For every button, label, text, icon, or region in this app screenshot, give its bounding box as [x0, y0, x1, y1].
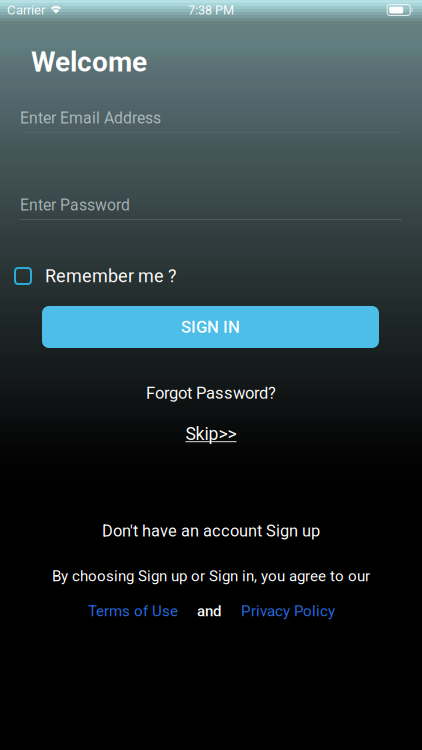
staticText: Terms of Use: [88, 602, 178, 620]
staticText: and: [197, 602, 221, 620]
staticText: Enter Password: [20, 196, 130, 214]
staticText: Skip>>: [185, 424, 236, 444]
button[interactable]: Privacy Policy: [239, 601, 337, 621]
button[interactable]: Skip>>: [0, 424, 422, 444]
button[interactable]: Remember me ?: [15, 262, 265, 290]
staticText: Forgot Password?: [146, 383, 276, 403]
staticText: Don't have an account Sign up: [102, 521, 320, 541]
staticText: Enter Email Address: [20, 109, 161, 127]
button[interactable]: Don't have an account Sign up: [0, 521, 422, 541]
staticText: Remember me ?: [45, 265, 177, 287]
staticText: 7:38 PM: [188, 2, 234, 17]
button[interactable]: Terms of Use: [87, 601, 179, 621]
staticText: Privacy Policy: [241, 602, 335, 620]
staticText: By choosing Sign up or Sign in, you agre…: [52, 567, 370, 585]
button[interactable]: SIGN IN: [42, 306, 379, 348]
staticText: Carrier: [7, 2, 45, 18]
staticText: Welcome: [31, 46, 147, 78]
staticText: SIGN IN: [181, 317, 240, 337]
button[interactable]: Forgot Password?: [0, 383, 422, 403]
